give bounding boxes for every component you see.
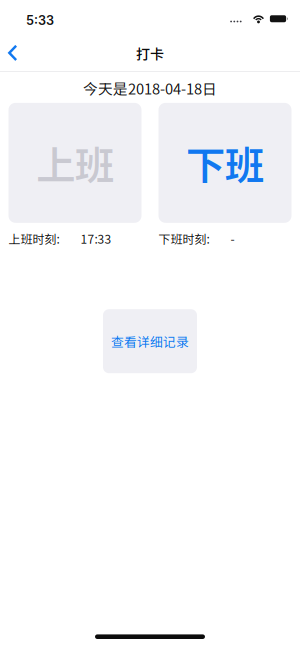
staticText: 下班 — [186, 134, 264, 191]
staticText: 上班时刻: — [8, 230, 59, 247]
staticText: 下班时刻: — [158, 230, 209, 247]
button[interactable]: Back — [0, 35, 33, 71]
staticText: 打卡 — [136, 43, 164, 64]
button[interactable]: 上班 — [8, 103, 141, 223]
button[interactable]: 下班 — [158, 103, 291, 223]
staticText: 查看详细记录 — [111, 332, 189, 350]
staticText: 5:33 — [26, 13, 54, 28]
staticText: 17:33 — [80, 230, 111, 247]
staticText: 今天是2018-04-18日 — [83, 78, 217, 99]
staticText: - — [230, 230, 234, 247]
staticText: 上班 — [36, 134, 114, 191]
button[interactable]: 查看详细记录 — [103, 309, 197, 373]
